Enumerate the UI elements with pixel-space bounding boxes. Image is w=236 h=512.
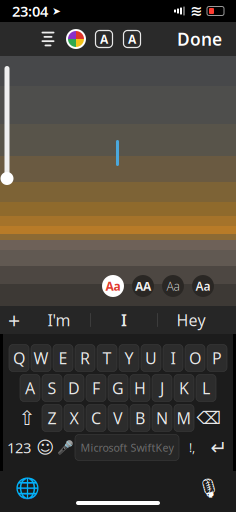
button[interactable]: V <box>108 404 128 431</box>
staticText: S <box>47 377 56 399</box>
staticText: ≋ <box>185 3 207 19</box>
staticText: I'm <box>47 309 70 331</box>
button[interactable]: J <box>152 374 172 401</box>
staticText: ➤ <box>48 5 61 17</box>
button[interactable]: Classic font <box>102 275 124 297</box>
button[interactable]: I'm <box>28 306 90 334</box>
button[interactable]: P <box>207 344 227 371</box>
staticText: Q <box>13 347 25 369</box>
staticText: G <box>112 377 124 399</box>
staticText: Hey <box>176 309 205 331</box>
button[interactable]: Hey <box>158 306 224 334</box>
button[interactable]: T <box>97 344 117 371</box>
staticText: I <box>170 347 175 369</box>
staticText: ↵ <box>210 436 227 459</box>
button[interactable]: Y <box>119 344 139 371</box>
staticText: D <box>68 377 80 399</box>
button[interactable]: U <box>141 344 161 371</box>
button[interactable]: B <box>130 404 150 431</box>
button[interactable]: I <box>163 344 183 371</box>
staticText: Aa <box>105 278 120 294</box>
staticText: L <box>202 377 210 399</box>
button[interactable]: D <box>64 374 84 401</box>
staticText: Microsoft SwiftKey <box>80 440 173 455</box>
button[interactable]: O <box>185 344 205 371</box>
staticText: 🌐 <box>14 477 39 499</box>
staticText: 23:04 <box>12 1 48 21</box>
staticText: I <box>121 309 127 331</box>
button[interactable]: S <box>42 374 62 401</box>
staticText: 🎙 <box>197 477 221 499</box>
button[interactable]: Space <box>75 434 179 460</box>
button[interactable]: N <box>152 404 172 431</box>
button[interactable]: X <box>64 404 84 431</box>
staticText: K <box>179 377 189 399</box>
staticText: Z <box>47 407 56 429</box>
staticText: O <box>189 347 201 369</box>
staticText: V <box>113 407 123 429</box>
button[interactable]: Shift <box>14 404 40 431</box>
staticText: C <box>91 407 101 429</box>
button[interactable]: Z <box>42 404 62 431</box>
button[interactable]: Done <box>172 21 227 56</box>
button[interactable]: E <box>53 344 73 371</box>
button[interactable]: Script font <box>162 275 184 297</box>
staticText: Done <box>177 27 222 50</box>
staticText: !, <box>189 439 195 455</box>
staticText: A <box>128 31 136 47</box>
button[interactable]: I <box>91 306 157 334</box>
staticText: N <box>156 407 168 429</box>
button[interactable]: Voice typing <box>55 434 75 460</box>
button[interactable]: Text effects <box>90 25 117 52</box>
button[interactable]: Dictation <box>192 475 226 501</box>
staticText: J <box>160 377 164 399</box>
button[interactable]: Delete <box>196 404 222 431</box>
button[interactable]: Switch keyboard <box>10 475 44 501</box>
staticText: X <box>69 407 78 429</box>
staticText: Aa <box>166 278 179 294</box>
staticText: Aa <box>195 278 210 294</box>
staticText: P <box>212 347 222 369</box>
button[interactable]: C <box>86 404 106 431</box>
button[interactable]: A <box>20 374 40 401</box>
staticText: ⌫ <box>196 408 221 428</box>
button[interactable]: Bold font <box>132 275 154 297</box>
button[interactable]: R <box>75 344 95 371</box>
staticText: A <box>25 377 35 399</box>
button[interactable]: F <box>86 374 106 401</box>
button[interactable]: Text colour <box>62 25 89 52</box>
staticText: ☺ <box>36 438 54 457</box>
button[interactable]: Serif font <box>192 275 214 297</box>
button[interactable]: Numbers <box>3 434 35 460</box>
staticText: T <box>102 347 111 369</box>
staticText: ⇧ <box>18 407 35 429</box>
button[interactable]: Punctuation <box>179 434 205 460</box>
button[interactable]: Return <box>205 434 233 460</box>
staticText: B <box>135 407 145 429</box>
staticText: M <box>176 407 191 429</box>
staticText: R <box>80 347 90 369</box>
staticText: 123 <box>7 438 31 457</box>
staticText: + <box>8 306 20 334</box>
button[interactable]: W <box>31 344 51 371</box>
staticText: AA <box>135 278 151 294</box>
button[interactable]: Text alignment <box>34 25 61 52</box>
button[interactable]: Q <box>9 344 29 371</box>
staticText: Y <box>124 347 133 369</box>
staticText: U <box>145 347 157 369</box>
staticText: A <box>100 31 108 47</box>
button[interactable]: M <box>174 404 194 431</box>
button[interactable]: Add sticker <box>0 306 28 334</box>
button[interactable]: Emoji <box>35 434 55 460</box>
staticText: 🎤 <box>56 440 73 455</box>
button[interactable]: G <box>108 374 128 401</box>
staticText: W <box>33 347 48 369</box>
staticText: H <box>134 377 146 399</box>
button[interactable]: Text background <box>118 25 145 52</box>
button[interactable]: K <box>174 374 194 401</box>
button[interactable]: L <box>196 374 216 401</box>
staticText: E <box>58 347 67 369</box>
staticText: F <box>92 377 100 399</box>
button[interactable]: H <box>130 374 150 401</box>
